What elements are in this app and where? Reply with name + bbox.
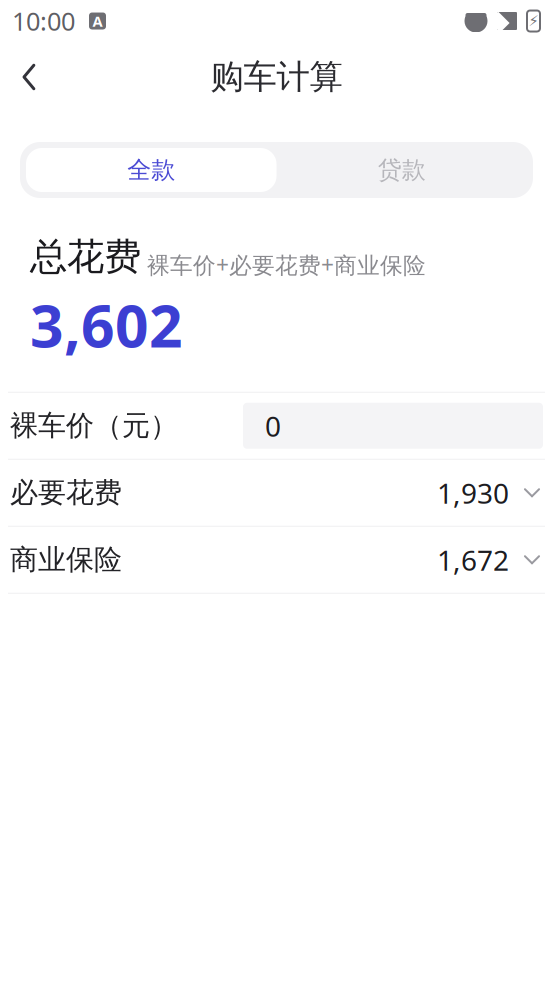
button[interactable]: 全款 — [26, 148, 276, 192]
button[interactable]: 返回 — [0, 48, 58, 106]
staticText: 必要花费 — [10, 476, 122, 510]
staticText: 全款 — [127, 155, 175, 185]
staticText: 10:00 — [12, 4, 75, 38]
button[interactable]: 必要花费 — [8, 460, 545, 526]
staticText: 贷款 — [378, 155, 426, 185]
staticText: 1,930 — [437, 474, 509, 511]
staticText: 0 — [265, 407, 281, 444]
staticText: 裸车价（元） — [10, 409, 178, 443]
button[interactable]: 商业保险 — [8, 527, 545, 593]
staticText: 购车计算 — [210, 56, 342, 97]
staticText: 裸车价+必要花费+商业保险 — [147, 250, 426, 280]
staticText: 商业保险 — [10, 543, 122, 577]
staticText: 3,602 — [30, 286, 183, 364]
staticText: A — [92, 11, 102, 31]
button[interactable]: 0 — [243, 403, 543, 449]
button[interactable]: 贷款 — [276, 148, 527, 192]
staticText: ⚡︎ — [528, 13, 538, 29]
staticText: 1,672 — [437, 541, 509, 578]
staticText: 总花费 — [30, 234, 141, 280]
